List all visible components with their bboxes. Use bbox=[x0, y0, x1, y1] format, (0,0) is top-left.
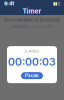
staticText: Pause bbox=[25, 73, 39, 78]
staticText: Focus session in progress bbox=[4, 17, 60, 22]
button[interactable]: Pause bbox=[21, 72, 43, 79]
staticText: ELAPSED bbox=[24, 49, 39, 53]
staticText: 00:00:03 bbox=[8, 55, 56, 68]
staticText: Deep work · Block 2 of 4 bbox=[10, 24, 53, 29]
staticText: ▮▮ ▯ bbox=[53, 1, 60, 6]
staticText: Timer bbox=[22, 7, 41, 15]
staticText: 9:41 bbox=[4, 0, 14, 7]
